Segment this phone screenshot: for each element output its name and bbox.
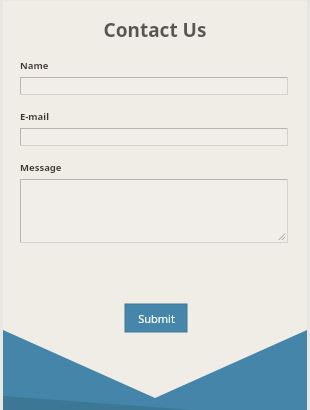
button[interactable]: Submit xyxy=(125,304,187,332)
button[interactable] xyxy=(20,179,288,243)
staticText: Name xyxy=(20,59,49,72)
staticText: Message xyxy=(20,161,62,174)
staticText: Submit xyxy=(138,311,175,326)
staticText: Contact Us xyxy=(0,17,310,43)
button[interactable] xyxy=(20,77,288,95)
staticText: E-mail xyxy=(20,110,49,123)
button[interactable] xyxy=(20,128,288,146)
